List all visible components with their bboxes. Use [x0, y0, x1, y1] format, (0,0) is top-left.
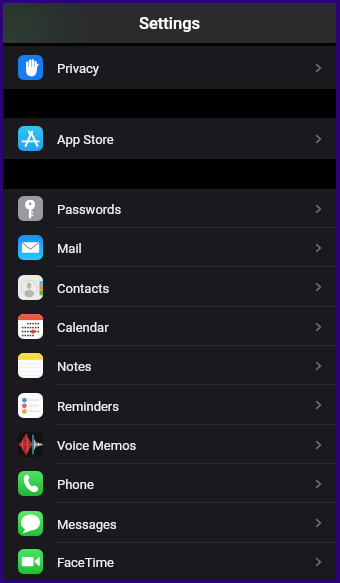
button[interactable]: Contacts [3, 267, 336, 307]
staticText: FaceTime [57, 555, 114, 570]
staticText: Calendar [57, 320, 109, 335]
button[interactable]: Mail [3, 228, 336, 267]
staticText: Passwords [57, 202, 122, 217]
button[interactable]: Privacy [3, 46, 336, 89]
staticText: Messages [57, 517, 117, 532]
staticText: App Store [57, 132, 114, 147]
staticText: Contacts [57, 281, 110, 296]
staticText: Mail [57, 241, 82, 256]
button[interactable]: App Store [3, 118, 336, 159]
button[interactable]: FaceTime [3, 543, 336, 580]
staticText: Phone [57, 477, 94, 492]
staticText: Privacy [57, 61, 99, 76]
button[interactable]: Voice Memos [3, 425, 336, 464]
button[interactable]: Passwords [3, 189, 336, 228]
button[interactable]: Phone [3, 464, 336, 503]
button[interactable]: Reminders [3, 385, 336, 425]
staticText: Reminders [57, 399, 119, 414]
staticText: Voice Memos [57, 438, 137, 453]
staticText: Settings [139, 14, 201, 33]
button[interactable]: Notes [3, 346, 336, 385]
button[interactable]: Calendar [3, 307, 336, 346]
button[interactable]: Messages [3, 503, 336, 543]
staticText: Notes [57, 359, 92, 374]
